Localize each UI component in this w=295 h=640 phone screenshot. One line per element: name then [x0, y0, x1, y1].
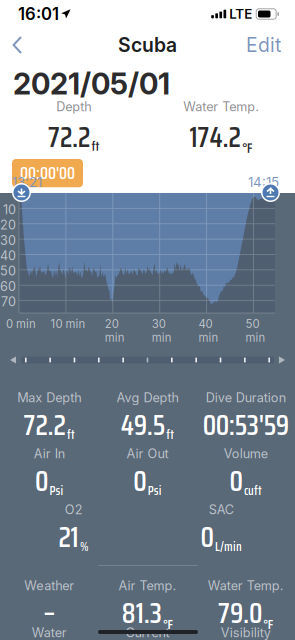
staticText: Weather — [24, 578, 74, 593]
button[interactable]: Back — [0, 29, 37, 61]
staticText: Visibility — [221, 625, 271, 640]
staticText: 10 min — [50, 317, 85, 331]
staticText: Psi — [49, 481, 63, 501]
staticText: cuft — [244, 481, 262, 501]
staticText: Air In — [34, 446, 65, 461]
staticText: % — [80, 537, 89, 557]
staticText: Depth — [56, 99, 91, 114]
staticText: 0 — [133, 459, 146, 503]
staticText: 40 — [0, 248, 16, 263]
staticText: 60 — [0, 279, 16, 294]
staticText: Avg Depth — [116, 390, 178, 405]
staticText: Psi — [148, 481, 162, 501]
staticText: L/min — [215, 537, 242, 557]
staticText: 00:53'59 — [203, 403, 289, 447]
staticText: 10 — [3, 202, 16, 217]
staticText: Dive Duration — [206, 390, 286, 405]
staticText: 0 min — [6, 317, 36, 331]
staticText: ft — [91, 136, 99, 157]
staticText: Max Depth — [17, 390, 81, 405]
staticText: 72.2 — [23, 403, 65, 447]
staticText: 20 — [0, 217, 16, 232]
staticText: 0 — [230, 459, 243, 503]
staticText: Air Temp. — [118, 578, 176, 593]
staticText: O2 — [65, 502, 83, 517]
staticText: 16:01 — [18, 4, 59, 24]
staticText: Water — [32, 625, 67, 640]
staticText: 50 min — [245, 317, 265, 344]
staticText: 0 — [200, 515, 213, 559]
staticText: ℉ — [264, 615, 274, 633]
staticText: 2021/05/01 — [13, 66, 170, 101]
staticText: 81.3 — [122, 591, 162, 635]
staticText: Scuba — [118, 33, 177, 57]
staticText: Current — [125, 625, 169, 640]
staticText: Air Out — [126, 446, 168, 461]
staticText: – — [43, 591, 55, 635]
staticText: LTE — [229, 6, 252, 22]
staticText: 21 — [58, 515, 78, 559]
staticText: SAC — [209, 502, 234, 517]
staticText: 49.5 — [121, 403, 165, 447]
staticText: 20 min — [105, 317, 125, 344]
staticText: 79.0 — [218, 591, 262, 635]
staticText: 174.2 — [189, 115, 240, 159]
staticText: ft — [67, 425, 75, 445]
staticText: 14:15 — [248, 174, 279, 190]
staticText: 13:21 — [12, 174, 42, 190]
staticText: 30 min — [152, 317, 172, 344]
staticText: 30 — [0, 233, 16, 248]
staticText: 70 — [1, 294, 16, 309]
staticText: ft — [166, 425, 174, 445]
staticText: ℉ — [163, 615, 173, 633]
staticText: 0 — [35, 459, 48, 503]
staticText: Water Temp. — [183, 99, 259, 114]
staticText: 40 min — [199, 317, 219, 344]
staticText: Edit — [246, 33, 281, 57]
staticText: Water Temp. — [208, 578, 284, 593]
staticText: 72.2 — [48, 115, 90, 159]
staticText: 00:00'00 — [20, 160, 75, 186]
staticText: 50 — [0, 263, 16, 279]
button[interactable]: Edit — [232, 26, 295, 64]
staticText: ℉ — [242, 138, 253, 157]
staticText: Volume — [224, 446, 268, 461]
